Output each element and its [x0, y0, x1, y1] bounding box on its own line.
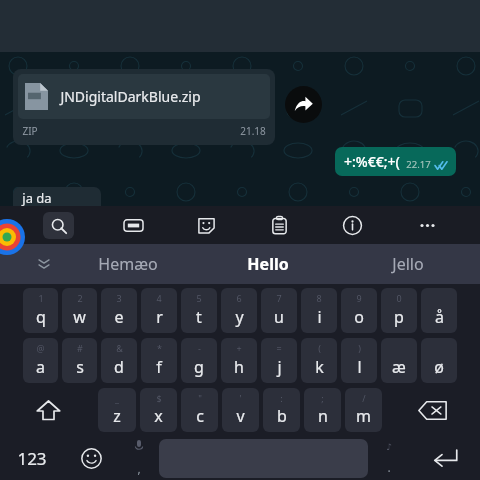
staticText: b — [277, 405, 287, 427]
button[interactable]: Period — [368, 436, 410, 480]
button[interactable]: Hemæo — [58, 244, 198, 284]
staticText: 22.17 — [406, 158, 431, 171]
staticText: q — [36, 306, 46, 328]
button[interactable]: 8 — [301, 288, 337, 333]
staticText: 1 — [38, 292, 44, 304]
button[interactable]: * — [141, 338, 177, 383]
button[interactable]: ' — [222, 388, 259, 432]
button[interactable]: 1 — [23, 288, 58, 333]
staticText: Hemæo — [98, 253, 158, 275]
staticText: l — [357, 356, 362, 378]
button[interactable]: _ — [98, 388, 136, 432]
staticText: g — [194, 356, 204, 378]
button[interactable]: Jello — [338, 244, 478, 284]
button[interactable]: Search — [43, 212, 74, 239]
staticText: ( — [318, 342, 321, 354]
staticText: 4 — [156, 292, 162, 304]
staticText: e — [114, 306, 124, 328]
button[interactable]: Clipboard — [262, 208, 296, 242]
staticText: +:%€€;+( — [344, 152, 400, 171]
button[interactable]: $ — [140, 388, 177, 432]
staticText: ' — [239, 392, 242, 404]
staticText: s — [76, 356, 84, 378]
button[interactable]: 9 — [341, 288, 377, 333]
button[interactable]: Shift — [0, 388, 96, 432]
staticText: v — [236, 405, 245, 427]
staticText: 5 — [196, 292, 202, 304]
button[interactable]: Info — [335, 208, 369, 242]
staticText: æ — [392, 356, 406, 378]
button[interactable]: # — [62, 338, 97, 383]
button[interactable]: 3 — [101, 288, 137, 333]
staticText: ; — [321, 392, 324, 404]
staticText: p — [394, 306, 404, 328]
button[interactable]: Hello — [198, 244, 338, 284]
staticText: " — [198, 392, 202, 404]
button[interactable]: Enter — [410, 436, 480, 480]
button[interactable]: 0 — [381, 288, 417, 333]
staticText: 6 — [236, 292, 242, 304]
staticText: 0 — [396, 292, 402, 304]
staticText: y — [235, 306, 244, 328]
button[interactable]: ) — [341, 338, 377, 383]
staticText: & — [116, 342, 123, 354]
staticText: JNDigitalDarkBlue.zip — [60, 87, 201, 106]
button[interactable]: " — [181, 388, 218, 432]
button[interactable]: 7 — [261, 288, 297, 333]
staticText: + — [236, 342, 242, 354]
staticText: - — [198, 342, 201, 354]
staticText: 7 — [276, 292, 282, 304]
staticText: k — [315, 356, 324, 378]
button[interactable]: å — [421, 288, 457, 333]
button[interactable]: Stickers — [189, 208, 223, 242]
staticText: j — [277, 356, 282, 378]
staticText: $ — [156, 392, 162, 404]
button[interactable]: JNDigitalDarkBlue.zip — [13, 69, 275, 145]
button[interactable]: Comma — [119, 436, 159, 480]
button[interactable]: & — [101, 338, 137, 383]
button[interactable]: +:%€€;+( — [344, 152, 448, 171]
staticText: z — [113, 405, 121, 427]
staticText: i — [317, 306, 322, 328]
button[interactable]: ; — [304, 388, 341, 432]
button[interactable]: + — [221, 338, 257, 383]
staticText: m — [356, 405, 371, 427]
button[interactable]: æ — [381, 338, 417, 383]
button[interactable]: 6 — [221, 288, 257, 333]
button[interactable]: = — [261, 338, 297, 383]
button[interactable]: Expand suggestions — [30, 244, 58, 284]
button[interactable]: ja da — [13, 187, 101, 208]
staticText: @ — [36, 342, 45, 354]
button[interactable]: 123 — [0, 436, 63, 480]
staticText: å — [435, 306, 444, 328]
button[interactable]: 5 — [181, 288, 217, 333]
button[interactable]: - — [181, 338, 217, 383]
staticText: _ — [115, 392, 119, 404]
staticText: Hello — [247, 253, 289, 275]
button[interactable]: Backspace — [384, 388, 480, 432]
button[interactable]: 4 — [141, 288, 177, 333]
button[interactable]: ( — [301, 338, 337, 383]
staticText: ) — [358, 342, 361, 354]
button[interactable]: Forward — [285, 86, 322, 123]
button[interactable]: Emoji — [63, 436, 119, 480]
button[interactable]: ø — [421, 338, 457, 383]
button[interactable]: @ — [23, 338, 58, 383]
staticText: o — [354, 306, 364, 328]
button[interactable]: 2 — [62, 288, 97, 333]
staticText: / — [362, 392, 366, 404]
staticText: = — [276, 342, 282, 354]
staticText: r — [156, 306, 163, 328]
staticText: ♪ — [386, 442, 392, 452]
staticText: t — [196, 306, 202, 328]
staticText: d — [114, 356, 124, 378]
button[interactable]: GIF — [116, 208, 150, 242]
button[interactable]: / — [345, 388, 382, 432]
button[interactable]: More options — [410, 208, 444, 242]
staticText: c — [196, 405, 204, 427]
staticText: Jello — [392, 253, 424, 275]
staticText: 3 — [116, 292, 122, 304]
staticText: a — [36, 356, 45, 378]
button[interactable]: : — [263, 388, 300, 432]
